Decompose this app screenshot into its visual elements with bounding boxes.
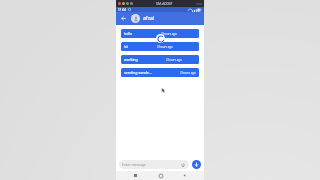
button[interactable]: Back: [119, 14, 128, 23]
button[interactable]: working: [121, 55, 199, 64]
button[interactable]: Send: [192, 160, 201, 169]
staticText: 2 hours ago: [180, 71, 196, 75]
staticText: SM-A005F: [156, 1, 173, 6]
staticText: working: [124, 57, 138, 62]
staticText: hii: [124, 44, 129, 49]
button[interactable]: Back: [180, 171, 189, 180]
staticText: 2 hours ago: [161, 32, 177, 36]
button[interactable]: Attach: [180, 162, 186, 168]
staticText: 2 hours ago: [166, 58, 182, 62]
button[interactable]: Recents: [131, 171, 140, 180]
button[interactable]: hello: [121, 29, 199, 38]
button[interactable]: Home: [156, 171, 165, 180]
staticText: 11:04: [118, 8, 127, 12]
button[interactable]: sending sender test message: [121, 68, 199, 77]
staticText: afzal: [143, 15, 155, 22]
staticText: 2 hours ago: [157, 45, 173, 49]
staticText: sending sender test message: [124, 70, 152, 75]
staticText: Enter message: [122, 162, 146, 167]
button[interactable]: Enter message: [119, 160, 189, 169]
button[interactable]: hii: [121, 42, 199, 51]
staticText: hello: [124, 31, 133, 36]
button[interactable]: Contact avatar: [131, 14, 140, 23]
